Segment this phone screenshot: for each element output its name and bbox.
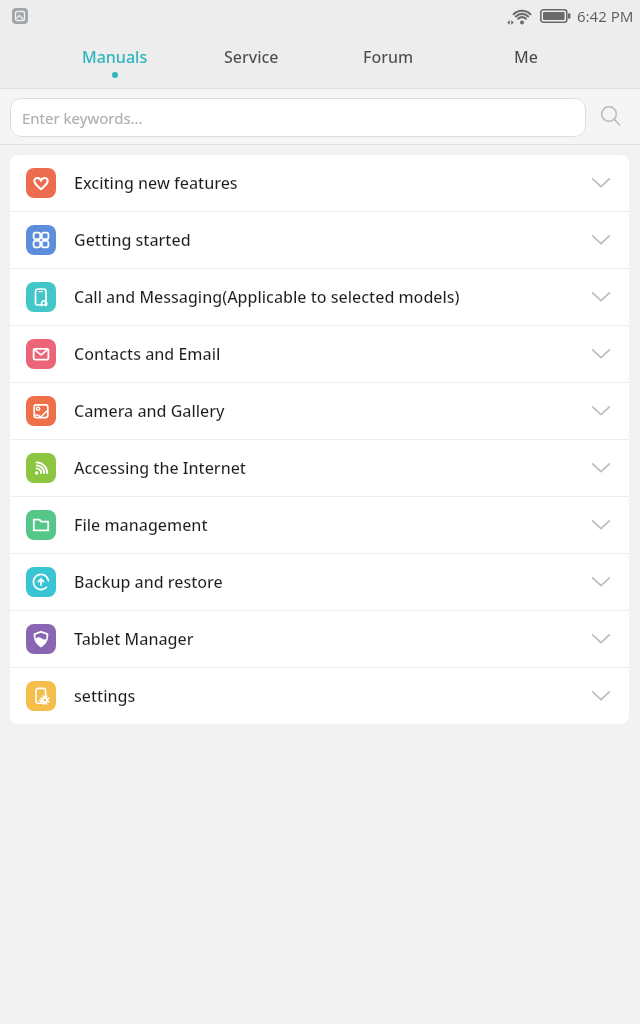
- staticText: Manuals: [82, 46, 148, 68]
- staticText: Camera and Gallery: [74, 400, 225, 422]
- button[interactable]: settings: [10, 668, 629, 724]
- button[interactable]: File management: [10, 497, 629, 553]
- staticText: Me: [514, 46, 538, 68]
- staticText: Enter keywords...: [22, 108, 143, 128]
- button[interactable]: Camera and Gallery: [10, 383, 629, 439]
- button[interactable]: Me: [457, 32, 594, 89]
- staticText: Exciting new features: [74, 172, 238, 194]
- button[interactable]: Enter keywords...: [10, 98, 586, 137]
- staticText: File management: [74, 514, 208, 536]
- button[interactable]: Forum: [320, 32, 457, 89]
- button[interactable]: Accessing the Internet: [10, 440, 629, 496]
- button[interactable]: Call and Messaging(Applicable to selecte…: [10, 269, 629, 325]
- staticText: Backup and restore: [74, 571, 223, 593]
- staticText: Call and Messaging(Applicable to selecte…: [74, 286, 460, 308]
- staticText: Service: [224, 46, 279, 68]
- button[interactable]: Contacts and Email: [10, 326, 629, 382]
- staticText: 6:42 PM: [577, 6, 634, 26]
- staticText: Getting started: [74, 229, 191, 251]
- button[interactable]: Tablet Manager: [10, 611, 629, 667]
- staticText: Accessing the Internet: [74, 457, 246, 479]
- button[interactable]: Manuals: [46, 32, 183, 89]
- button[interactable]: Exciting new features: [10, 155, 629, 211]
- button[interactable]: Service: [183, 32, 320, 89]
- staticText: settings: [74, 685, 136, 707]
- staticText: Contacts and Email: [74, 343, 221, 365]
- staticText: Forum: [363, 46, 414, 68]
- button[interactable]: [586, 92, 636, 142]
- button[interactable]: Getting started: [10, 212, 629, 268]
- button[interactable]: Backup and restore: [10, 554, 629, 610]
- staticText: Tablet Manager: [74, 628, 194, 650]
